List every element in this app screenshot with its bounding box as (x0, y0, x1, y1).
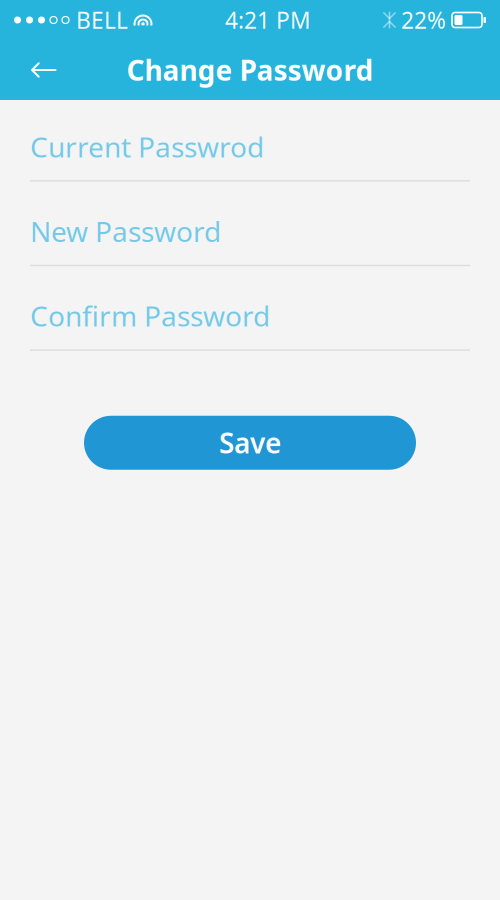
staticText: 4:21 PM (225, 5, 311, 35)
staticText: 22% (401, 5, 446, 35)
button[interactable]: Confirm Password (30, 266, 470, 351)
staticText: BELL (76, 5, 128, 35)
staticText: Change Password (126, 51, 373, 89)
staticText: Confirm Password (30, 297, 270, 334)
button[interactable]: Save (84, 416, 416, 470)
button[interactable]: Back (16, 44, 72, 96)
button[interactable]: Current Passwrod (30, 100, 470, 182)
staticText: New Password (30, 213, 221, 250)
button[interactable]: New Password (30, 182, 470, 266)
staticText: Current Passwrod (30, 128, 264, 165)
staticText: Save (219, 424, 281, 461)
